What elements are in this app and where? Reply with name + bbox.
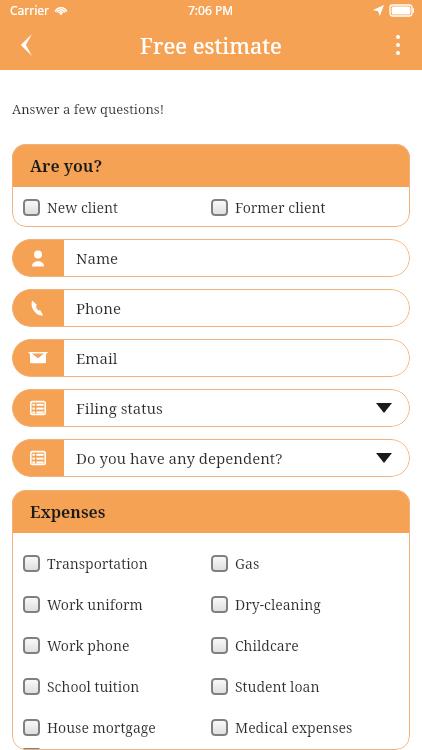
- button[interactable]: Back: [0, 21, 48, 69]
- staticText: Dry-cleaning: [235, 595, 321, 614]
- button[interactable]: House mortgage: [23, 718, 211, 737]
- staticText: Childcare: [235, 636, 299, 655]
- button[interactable]: Work phone: [23, 636, 211, 655]
- staticText: Work phone: [47, 636, 130, 655]
- staticText: Medical expenses: [235, 718, 353, 737]
- staticText: Carrier: [10, 2, 50, 18]
- staticText: Transportation: [47, 554, 148, 573]
- staticText: Name: [76, 248, 119, 268]
- staticText: Gas: [235, 554, 260, 573]
- button[interactable]: Childcare: [211, 636, 399, 655]
- button[interactable]: Do you have any dependent?: [12, 439, 410, 477]
- staticText: 7:06 PM: [188, 2, 234, 18]
- staticText: Student loan: [235, 677, 320, 696]
- button[interactable]: Gas: [211, 554, 399, 573]
- button[interactable]: Dry-cleaning: [211, 595, 399, 614]
- button[interactable]: More options: [374, 21, 422, 69]
- staticText: Former client: [235, 198, 326, 217]
- button[interactable]: Donation: [23, 748, 211, 750]
- button[interactable]: Former client: [211, 198, 399, 217]
- staticText: House mortgage: [47, 718, 156, 737]
- staticText: School tuition: [47, 677, 140, 696]
- button[interactable]: Transportation: [23, 554, 211, 573]
- button[interactable]: Name: [12, 239, 410, 277]
- staticText: Phone: [76, 298, 121, 318]
- staticText: New client: [47, 198, 119, 217]
- staticText: Do you have any dependent?: [76, 448, 283, 468]
- staticText: Filing status: [76, 398, 163, 418]
- staticText: Donation: [47, 748, 109, 750]
- button[interactable]: Email: [12, 339, 410, 377]
- button[interactable]: New client: [23, 198, 211, 217]
- staticText: Answer a few questions!: [12, 100, 164, 118]
- button[interactable]: Work uniform: [23, 595, 211, 614]
- button[interactable]: Phone: [12, 289, 410, 327]
- staticText: Work uniform: [47, 595, 143, 614]
- button[interactable]: School tuition: [23, 677, 211, 696]
- staticText: Free estimate: [140, 30, 282, 60]
- button[interactable]: Filing status: [12, 389, 410, 427]
- staticText: Email: [76, 348, 118, 368]
- staticText: Expenses: [30, 501, 106, 523]
- button[interactable]: Medical expenses: [211, 718, 399, 737]
- button[interactable]: Student loan: [211, 677, 399, 696]
- staticText: Are you?: [30, 155, 103, 177]
